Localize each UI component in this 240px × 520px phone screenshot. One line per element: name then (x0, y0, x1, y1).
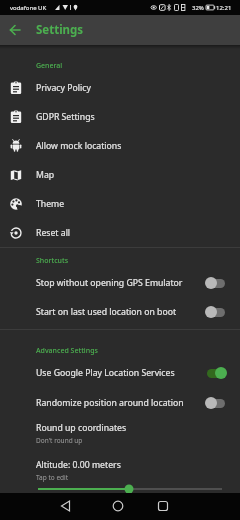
staticText: GDPR Settings (36, 111, 95, 123)
button[interactable]: Theme (0, 189, 240, 218)
button[interactable]: Reset all (0, 218, 240, 247)
staticText: Don't round up (36, 436, 83, 445)
button[interactable]: Altitude: 0.00 meters (0, 449, 240, 482)
staticText: vodafone UK (10, 4, 47, 12)
button[interactable] (0, 493, 80, 520)
staticText: Randomize position around location (36, 397, 184, 409)
staticText: Shortcuts (36, 256, 69, 266)
staticText: Altitude: 0.00 meters (36, 459, 121, 471)
button[interactable] (80, 493, 160, 520)
staticText: Advanced Settings (36, 346, 98, 356)
staticText: Stop without opening GPS Emulator (36, 277, 183, 289)
button[interactable]: Use Google Play Location Services (0, 358, 240, 388)
staticText: General (36, 61, 63, 71)
button[interactable] (160, 493, 240, 520)
staticText: Settings (36, 22, 84, 38)
staticText: Tap to edit (36, 473, 69, 482)
staticText: Use Google Play Location Services (36, 367, 175, 379)
button[interactable]: Start on last used location on boot (0, 297, 240, 326)
button[interactable]: Round up coordinates (0, 417, 240, 449)
button[interactable]: Privacy Policy (0, 73, 240, 102)
staticText: Theme (36, 198, 65, 210)
staticText: Round up coordinates (36, 422, 127, 434)
button[interactable] (0, 15, 30, 45)
staticText: 12:21 (216, 4, 232, 12)
staticText: Map (36, 169, 55, 181)
staticText: Privacy Policy (36, 82, 91, 94)
staticText: Start on last used location on boot (36, 306, 177, 318)
staticText: 32% (192, 4, 204, 12)
staticText: Reset all (36, 227, 71, 239)
button[interactable] (0, 482, 240, 492)
staticText: Allow mock locations (36, 140, 122, 152)
button[interactable]: Randomize position around location (0, 388, 240, 417)
button[interactable]: Allow mock locations (0, 131, 240, 160)
button[interactable]: GDPR Settings (0, 102, 240, 131)
button[interactable]: Map (0, 160, 240, 189)
button[interactable]: Stop without opening GPS Emulator (0, 268, 240, 297)
